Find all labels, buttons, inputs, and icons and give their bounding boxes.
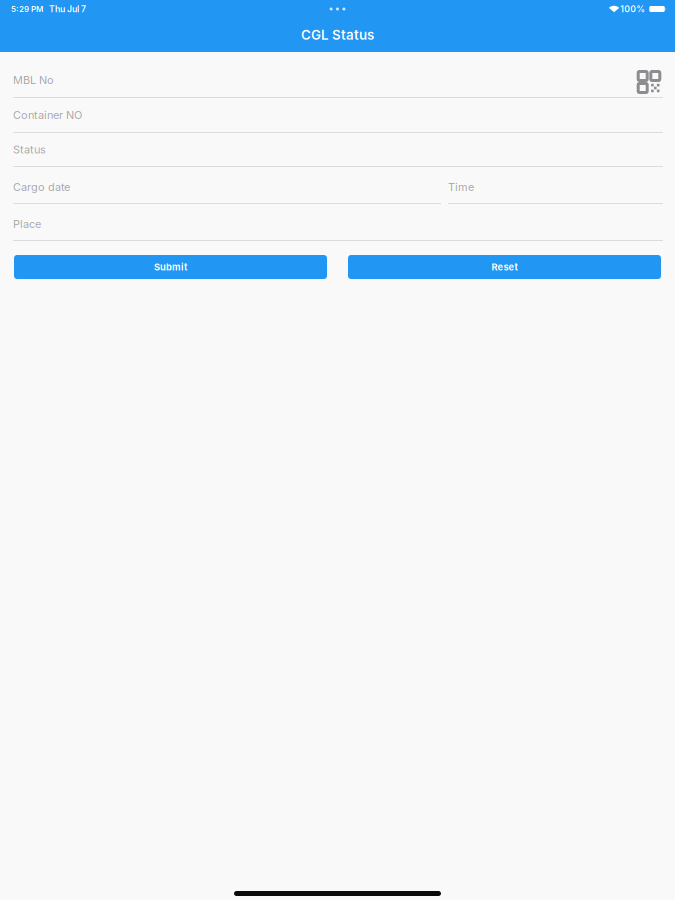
- staticText: Reset: [491, 261, 517, 273]
- button[interactable]: Scan barcode: [638, 67, 663, 92]
- staticText: Time: [448, 180, 474, 194]
- staticText: CGL Status: [301, 27, 374, 43]
- staticText: Container NO: [13, 108, 82, 122]
- staticText: MBL No: [13, 73, 54, 87]
- staticText: Submit: [154, 261, 187, 273]
- button[interactable]: Reset: [348, 255, 661, 279]
- staticText: Place: [13, 217, 41, 231]
- staticText: 5:29 PM: [11, 4, 43, 14]
- staticText: Cargo date: [13, 180, 70, 194]
- button[interactable]: Submit: [14, 255, 327, 279]
- staticText: Status: [13, 143, 46, 156]
- staticText: 100%: [620, 4, 645, 14]
- staticText: Thu Jul 7: [49, 4, 86, 14]
